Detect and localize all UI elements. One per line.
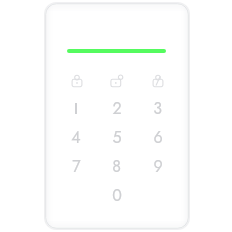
button[interactable]: Locked: [67, 69, 87, 89]
staticText: 5: [112, 126, 122, 149]
button[interactable]: 4: [56, 123, 96, 152]
staticText: 4: [71, 126, 81, 149]
button[interactable]: Unlocked: [107, 69, 127, 89]
staticText: 6: [153, 126, 163, 149]
staticText: 2: [112, 97, 122, 120]
button[interactable]: 8: [96, 152, 137, 181]
button[interactable]: 0: [96, 181, 137, 210]
staticText: 3: [153, 97, 162, 120]
button[interactable]: 5: [96, 123, 137, 152]
button[interactable]: 6: [137, 123, 178, 152]
button[interactable]: 1: [56, 94, 96, 123]
button[interactable]: 3: [137, 94, 178, 123]
button[interactable]: 7: [56, 152, 96, 181]
staticText: 8: [112, 155, 121, 178]
button[interactable]: 9: [137, 152, 178, 181]
button[interactable]: 2: [96, 94, 137, 123]
staticText: 0: [112, 184, 122, 207]
staticText: 9: [153, 155, 163, 178]
button[interactable]: Lock disabled: [148, 69, 168, 89]
staticText: 7: [72, 155, 81, 178]
